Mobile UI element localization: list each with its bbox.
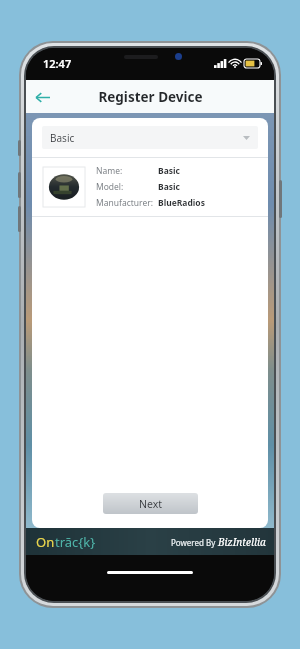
staticText: Next	[139, 497, 163, 511]
staticText: Basic	[158, 181, 180, 193]
staticText: On	[36, 533, 55, 551]
staticText: Register Device	[98, 88, 203, 106]
staticText: trāc{k}	[55, 533, 96, 551]
staticText: 12:47	[43, 56, 72, 71]
staticText: Name:	[96, 165, 123, 177]
staticText: Model:	[96, 181, 124, 193]
staticText: Powered By	[171, 537, 218, 548]
button[interactable]: Back	[26, 81, 58, 113]
button[interactable]: Basic	[42, 126, 258, 149]
staticText: Basic	[50, 131, 243, 145]
staticText: BizIntellia	[218, 535, 266, 549]
staticText: Basic	[158, 165, 180, 177]
button[interactable]: Next	[103, 493, 198, 514]
staticText: BlueRadios	[158, 197, 205, 209]
staticText: Manufacturer:	[96, 197, 154, 209]
button[interactable]: On	[36, 533, 96, 551]
